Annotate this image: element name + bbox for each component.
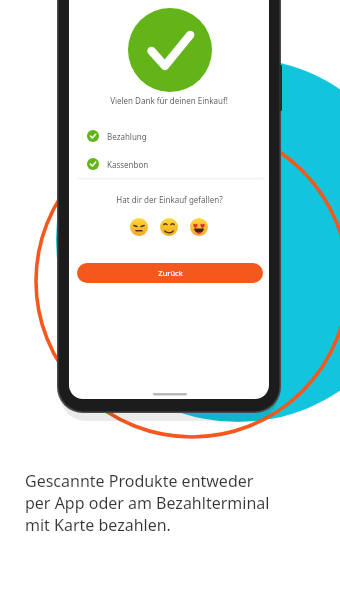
button[interactable]: Kassenbon [77,150,265,178]
staticText: per App oder am Bezahlterminal [25,492,270,514]
staticText: mit Karte bezahlen. [25,514,171,536]
button[interactable]: Sehr gut [190,218,208,236]
staticText: Bezahlung [107,131,147,142]
staticText: Vielen Dank für deinen Einkauf! [110,95,228,106]
button[interactable]: Bezahlung [77,122,265,150]
staticText: Kassenbon [107,159,149,170]
staticText: Hat dir der Einkauf gefallen? [116,194,223,205]
button[interactable]: Gut [160,218,178,236]
button[interactable]: Nicht gut [130,218,148,236]
staticText: Gescannte Produkte entweder [25,470,254,492]
button[interactable]: Zurück [77,263,263,283]
staticText: Zurück [158,268,183,278]
